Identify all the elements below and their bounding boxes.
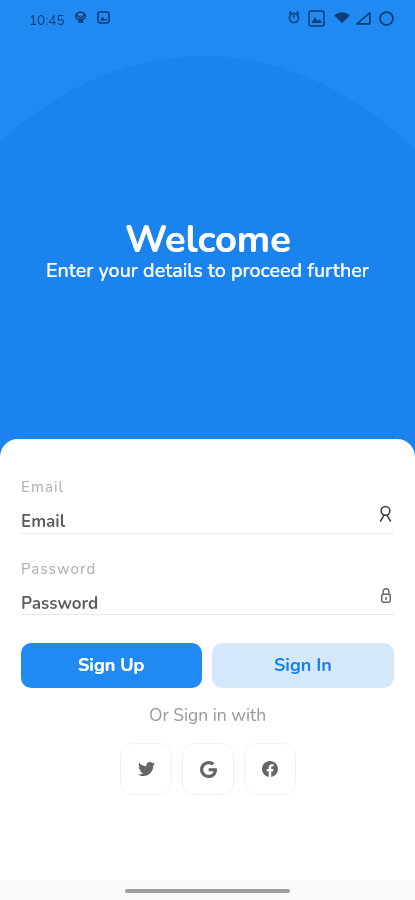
staticText: Password: [21, 592, 99, 615]
button[interactable]: Sign in with Google: [182, 743, 234, 795]
staticText: Or Sign in with: [149, 703, 267, 727]
button[interactable]: Sign Up: [21, 643, 202, 688]
button[interactable]: Sign in with Twitter: [120, 743, 172, 795]
staticText: Password: [21, 559, 97, 579]
staticText: 10:45: [29, 11, 65, 29]
staticText: Welcome: [125, 214, 291, 266]
staticText: Enter your details to proceed further: [46, 257, 369, 284]
staticText: Sign In: [274, 653, 332, 678]
button[interactable]: Sign in with Facebook: [244, 743, 296, 795]
button[interactable]: Sign In: [212, 643, 394, 688]
staticText: Email: [21, 477, 65, 497]
staticText: Sign Up: [78, 653, 145, 678]
staticText: Email: [21, 510, 66, 533]
